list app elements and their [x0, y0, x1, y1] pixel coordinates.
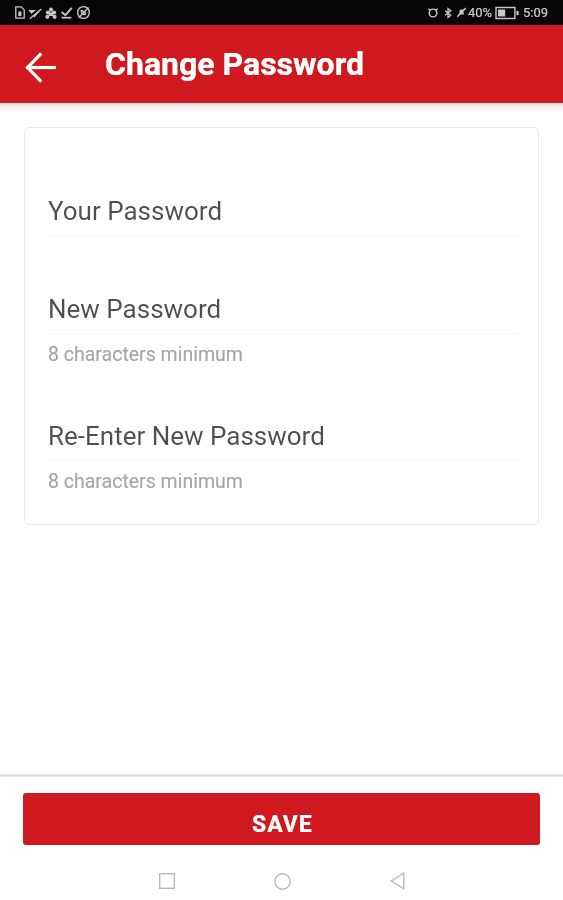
staticText: 8 characters minimum [48, 470, 243, 493]
staticText: 8 characters minimum [48, 343, 243, 366]
staticText: 5:09 [523, 5, 549, 20]
button[interactable]: Home [259, 858, 305, 900]
staticText: Change Password [105, 45, 365, 83]
staticText: Your Password [48, 196, 223, 226]
staticText: Re-Enter New Password [48, 421, 325, 451]
button[interactable]: Navigate up [15, 41, 67, 93]
staticText: 40% [468, 5, 493, 20]
staticText: New Password [48, 294, 222, 324]
button[interactable]: Recent apps [144, 858, 190, 900]
staticText: SAVE [252, 811, 313, 838]
button[interactable]: Back [374, 858, 420, 900]
button[interactable]: SAVE [23, 793, 540, 845]
